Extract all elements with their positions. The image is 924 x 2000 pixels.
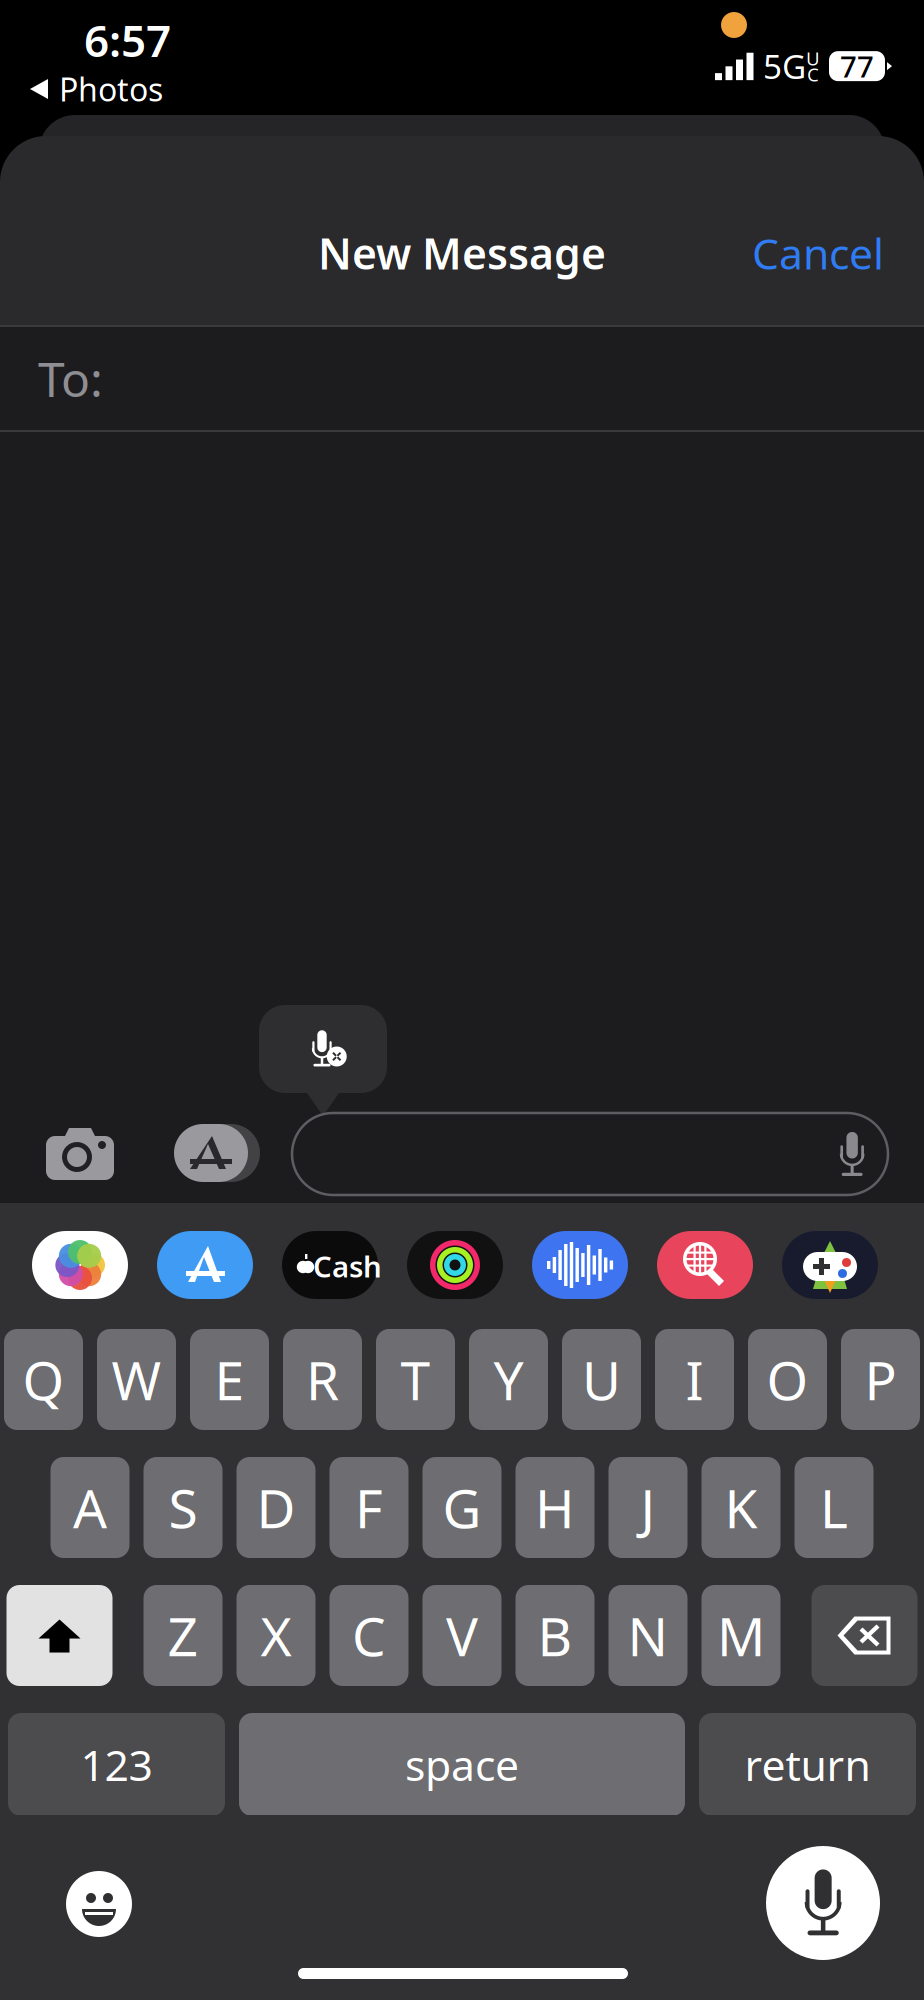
button[interactable]: Delete <box>811 1585 917 1686</box>
button[interactable] <box>292 1113 888 1195</box>
button[interactable]: X <box>236 1585 315 1686</box>
button[interactable]: F <box>329 1457 408 1558</box>
staticText: R <box>306 1344 339 1415</box>
button[interactable]: return <box>699 1713 916 1816</box>
button[interactable]: V <box>422 1585 501 1686</box>
button[interactable]: R <box>283 1329 362 1430</box>
button[interactable]: Z <box>143 1585 222 1686</box>
button[interactable]: Image Search <box>657 1231 753 1299</box>
button[interactable]: Apple Cash <box>282 1231 378 1299</box>
staticText: 123 <box>80 1736 152 1793</box>
staticText: X <box>260 1600 291 1671</box>
button[interactable]: C <box>329 1585 408 1686</box>
staticText: G <box>442 1472 481 1543</box>
staticText: M <box>717 1600 765 1671</box>
button[interactable]: I <box>655 1329 734 1430</box>
button[interactable]: Camera <box>44 1126 116 1180</box>
staticText: E <box>214 1344 244 1415</box>
staticText: O <box>766 1344 808 1415</box>
button[interactable]: Emoji <box>66 1871 132 1937</box>
staticText: D <box>256 1472 295 1543</box>
button[interactable]: Q <box>4 1329 83 1430</box>
staticText: L <box>820 1472 848 1543</box>
button[interactable]: S <box>143 1457 222 1558</box>
staticText: Cash <box>313 1246 382 1285</box>
button[interactable]: P <box>841 1329 920 1430</box>
staticText: N <box>627 1600 668 1671</box>
button[interactable]: N <box>608 1585 687 1686</box>
button[interactable]: D <box>236 1457 315 1558</box>
staticText: W <box>111 1344 161 1415</box>
button[interactable]: space <box>239 1713 685 1816</box>
staticText: T <box>400 1344 430 1415</box>
button[interactable]: 123 <box>8 1713 225 1816</box>
button[interactable]: E <box>190 1329 269 1430</box>
staticText: K <box>724 1472 757 1543</box>
button[interactable]: Cancel <box>684 225 884 281</box>
staticText: H <box>535 1472 575 1543</box>
button[interactable]: Fitness <box>407 1231 503 1299</box>
button[interactable]: L <box>794 1457 873 1558</box>
button[interactable]: Dictate <box>766 1846 880 1960</box>
staticText: J <box>640 1472 655 1543</box>
staticText: 5G <box>763 44 806 88</box>
staticText: return <box>744 1736 870 1793</box>
staticText: U <box>582 1344 621 1415</box>
staticText: Photos <box>59 68 163 110</box>
staticText: 6:57 <box>84 11 171 69</box>
button[interactable]: To: <box>0 325 150 432</box>
staticText: I <box>685 1344 703 1415</box>
button[interactable]: G <box>422 1457 501 1558</box>
button[interactable]: J <box>608 1457 687 1558</box>
button[interactable]: Photos <box>29 69 163 109</box>
button[interactable]: U <box>562 1329 641 1430</box>
staticText: space <box>405 1736 519 1793</box>
button[interactable]: H <box>515 1457 594 1558</box>
staticText: S <box>168 1472 197 1543</box>
staticText: Cancel <box>752 225 884 281</box>
button[interactable]: Apps <box>166 1124 256 1182</box>
button[interactable]: T <box>376 1329 455 1430</box>
button[interactable]: W <box>97 1329 176 1430</box>
button[interactable]: B <box>515 1585 594 1686</box>
button[interactable]: App Store <box>157 1231 253 1299</box>
button[interactable]: Games <box>782 1231 878 1299</box>
staticText: Y <box>493 1344 523 1415</box>
button[interactable]: Photos <box>32 1231 128 1299</box>
staticText: F <box>355 1472 383 1543</box>
staticText: C <box>807 62 819 86</box>
staticText: V <box>446 1600 478 1671</box>
button[interactable]: M <box>701 1585 780 1686</box>
button[interactable]: Shift <box>6 1585 112 1686</box>
staticText: P <box>864 1344 896 1415</box>
staticText: 77 <box>840 47 874 86</box>
button[interactable]: K <box>701 1457 780 1558</box>
staticText: Q <box>22 1344 64 1415</box>
staticText: Z <box>167 1600 198 1671</box>
button[interactable]: Audio Message <box>532 1231 628 1299</box>
staticText: To: <box>38 347 103 410</box>
staticText: B <box>537 1600 572 1671</box>
staticText: New Message <box>318 225 606 281</box>
staticText: U <box>806 46 820 70</box>
staticText: C <box>352 1600 386 1671</box>
button[interactable]: O <box>748 1329 827 1430</box>
button[interactable]: A <box>50 1457 129 1558</box>
button[interactable]: Y <box>469 1329 548 1430</box>
staticText: A <box>73 1472 107 1543</box>
